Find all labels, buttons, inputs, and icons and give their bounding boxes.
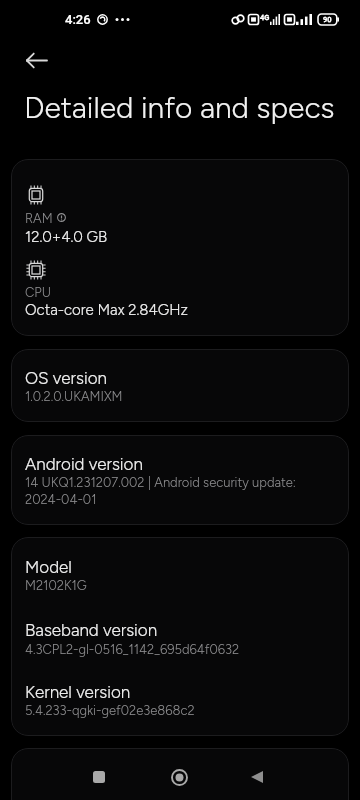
staticText: Octa-core Max 2.84GHz [25,301,189,319]
staticText: Model [25,557,72,577]
button[interactable] [11,748,349,800]
staticText: 12.0+4.0 GB [25,228,108,246]
button[interactable]: Model [11,537,349,736]
button[interactable]: RAM [11,159,349,336]
staticText: 4G [260,13,270,22]
staticText: 1.0.2.0.UKAMIXM [25,389,123,405]
staticText: 5.4.233-qgki-gef02e3e868c2 [25,703,195,719]
button[interactable]: Back [235,755,279,799]
staticText: 4.3CPL2-gl-0516_1142_695d64f0632 [25,642,240,658]
button[interactable]: Recents [77,755,121,799]
button[interactable]: Home [157,755,201,799]
staticText: 4:26 [65,12,91,27]
button[interactable]: Back [16,40,56,80]
staticText: 14 UKQ1.231207.002 | Android security up… [25,475,296,491]
button[interactable]: OS version [11,349,349,422]
staticText: M2102K1G [25,578,87,594]
staticText: CPU [25,285,51,301]
staticText: 2024-04-01 [25,492,97,508]
staticText: OS version [25,368,107,388]
staticText: 90 [323,15,332,24]
staticText: RAM [25,211,53,227]
staticText: Kernel version [25,682,131,702]
staticText: Detailed info and specs [24,89,335,125]
staticText: Android version [25,454,143,474]
staticText: Baseband version [25,620,158,640]
button[interactable]: Android version [11,435,349,525]
